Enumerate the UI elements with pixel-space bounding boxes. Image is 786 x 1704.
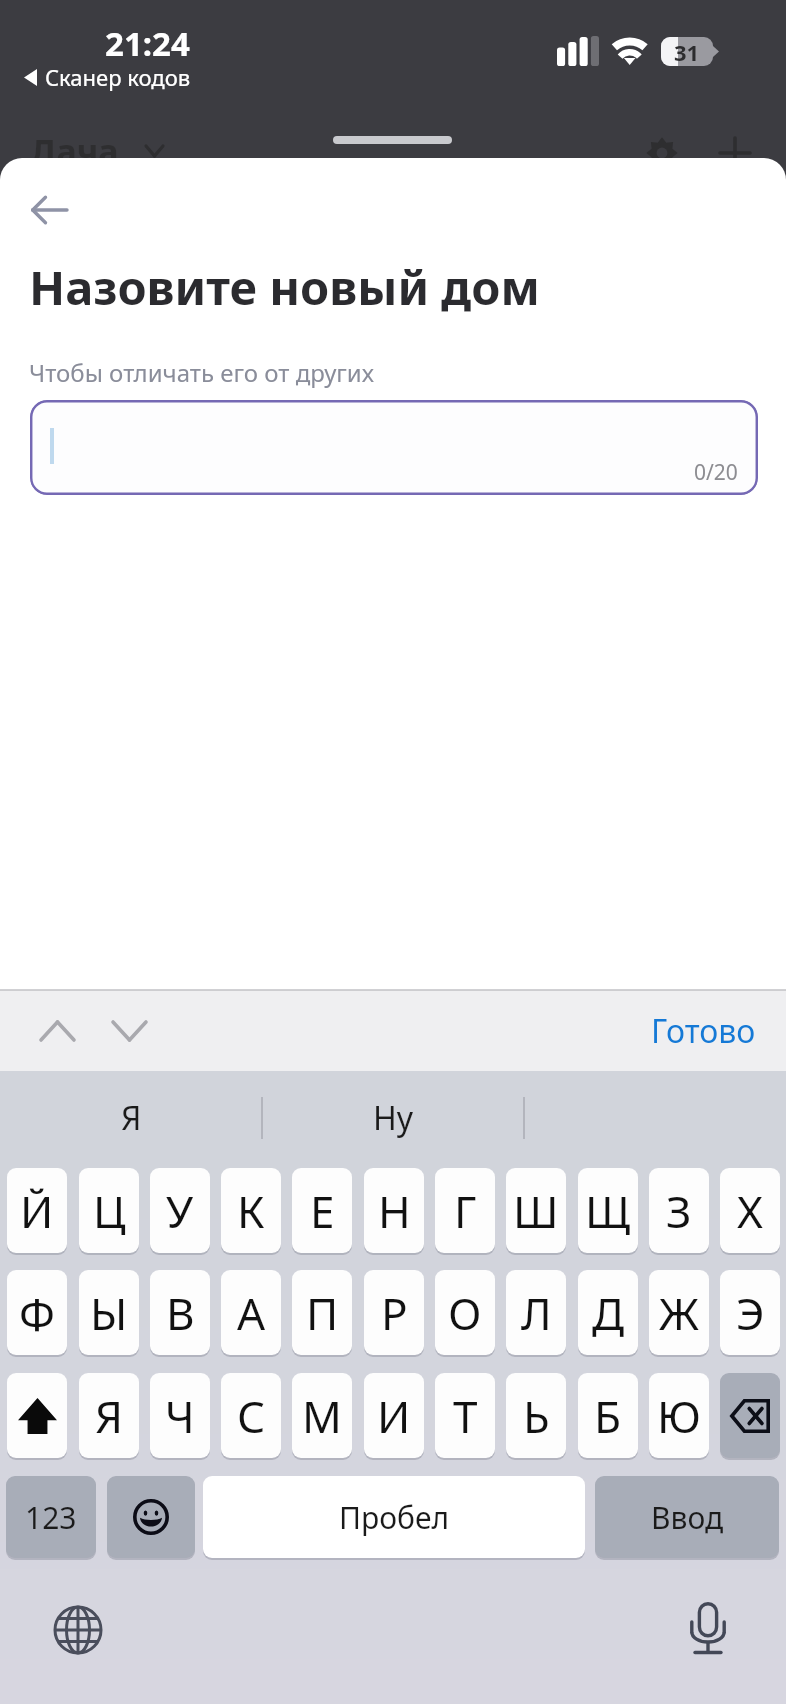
staticText: С <box>237 1386 266 1446</box>
staticText: 31 <box>674 37 700 66</box>
staticText: И <box>377 1386 411 1446</box>
staticText: В <box>166 1283 195 1343</box>
button[interactable]: Р <box>364 1270 424 1355</box>
button[interactable]: У <box>150 1168 210 1253</box>
staticText: Назовите новый дом <box>29 255 540 319</box>
button[interactable]: Удалить <box>720 1373 780 1458</box>
staticText: Ф <box>19 1283 55 1343</box>
button[interactable]: Л <box>506 1270 566 1355</box>
button[interactable]: Г <box>435 1168 495 1253</box>
button[interactable]: Х <box>720 1168 780 1253</box>
staticText: Ш <box>513 1181 559 1241</box>
button[interactable]: И <box>364 1373 424 1458</box>
staticText: Б <box>594 1386 622 1446</box>
staticText: Ну <box>373 1096 414 1140</box>
staticText: Х <box>737 1181 763 1241</box>
button[interactable]: 123 <box>6 1476 96 1558</box>
button[interactable]: Ф <box>7 1270 67 1355</box>
button[interactable]: Т <box>435 1373 495 1458</box>
button[interactable]: О <box>435 1270 495 1355</box>
button[interactable]: Сменить язык <box>48 1600 108 1660</box>
staticText: Н <box>378 1181 411 1241</box>
button[interactable]: 0/20 <box>30 400 758 495</box>
staticText: Ж <box>659 1283 699 1343</box>
staticText: 21:24 <box>105 21 190 66</box>
staticText: Э <box>736 1283 765 1343</box>
staticText: Ч <box>165 1386 195 1446</box>
button[interactable]: Ввод <box>595 1476 779 1558</box>
staticText: Е <box>310 1181 335 1241</box>
staticText: П <box>306 1283 339 1343</box>
staticText: Ы <box>90 1283 128 1343</box>
button[interactable]: Эмодзи <box>107 1476 195 1558</box>
staticText: Ввод <box>651 1497 724 1538</box>
staticText: М <box>302 1386 342 1446</box>
button[interactable]: Предыдущее поле <box>28 1004 86 1058</box>
button[interactable]: Н <box>364 1168 424 1253</box>
button[interactable]: Сканер кодов <box>24 62 191 92</box>
staticText: Я <box>95 1386 124 1446</box>
button[interactable]: Ь <box>506 1373 566 1458</box>
staticText: 123 <box>25 1497 77 1538</box>
staticText: Я <box>121 1096 142 1140</box>
staticText: Ю <box>657 1386 701 1446</box>
button[interactable]: С <box>221 1373 281 1458</box>
button[interactable]: Ч <box>150 1373 210 1458</box>
staticText: Ц <box>93 1181 126 1241</box>
staticText: О <box>448 1283 482 1343</box>
staticText: Р <box>381 1283 408 1343</box>
button[interactable]: К <box>221 1168 281 1253</box>
button[interactable]: Я <box>79 1373 139 1458</box>
staticText: З <box>666 1181 692 1241</box>
button[interactable]: Диктовка <box>690 1602 726 1654</box>
staticText: У <box>166 1181 194 1241</box>
button[interactable]: Shift <box>7 1373 67 1458</box>
button[interactable]: В <box>150 1270 210 1355</box>
staticText: Л <box>521 1283 552 1343</box>
button[interactable]: Ш <box>506 1168 566 1253</box>
staticText: Дача <box>30 128 119 174</box>
button[interactable]: Назад <box>15 176 83 244</box>
button[interactable]: З <box>649 1168 709 1253</box>
button[interactable]: Б <box>578 1373 638 1458</box>
staticText: А <box>237 1283 266 1343</box>
staticText: Д <box>592 1283 625 1343</box>
button[interactable]: Ж <box>649 1270 709 1355</box>
staticText: Пробел <box>339 1497 450 1538</box>
staticText: Готово <box>651 1009 756 1053</box>
button[interactable]: Ы <box>79 1270 139 1355</box>
staticText: Т <box>453 1386 478 1446</box>
button[interactable]: Е <box>292 1168 352 1253</box>
button[interactable]: Ц <box>79 1168 139 1253</box>
staticText: Ь <box>523 1386 550 1446</box>
button[interactable]: Ю <box>649 1373 709 1458</box>
button[interactable]: М <box>292 1373 352 1458</box>
staticText: Й <box>20 1181 54 1241</box>
button[interactable]: Д <box>578 1270 638 1355</box>
button[interactable]: Готово <box>651 1009 756 1053</box>
button[interactable]: А <box>221 1270 281 1355</box>
button[interactable]: Следующее поле <box>100 1004 158 1058</box>
button[interactable]: Э <box>720 1270 780 1355</box>
staticText: 0/20 <box>694 458 738 487</box>
staticText: К <box>237 1181 265 1241</box>
staticText: Щ <box>585 1181 631 1241</box>
staticText: Чтобы отличать его от других <box>29 356 375 389</box>
staticText: Г <box>454 1181 477 1241</box>
button[interactable]: П <box>292 1270 352 1355</box>
button[interactable]: Й <box>7 1168 67 1253</box>
button[interactable]: Щ <box>578 1168 638 1253</box>
staticText: Сканер кодов <box>45 62 191 92</box>
button[interactable]: Пробел <box>203 1476 585 1558</box>
